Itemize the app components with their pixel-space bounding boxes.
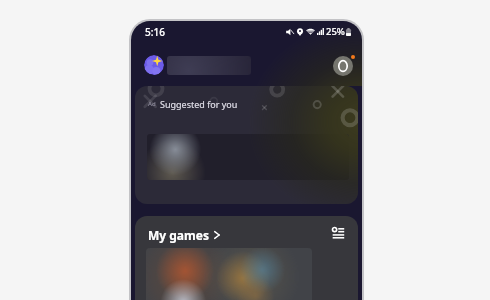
staticText: 25%	[326, 25, 345, 38]
button[interactable]	[146, 248, 312, 300]
button[interactable]: Ad	[135, 86, 358, 204]
button[interactable]: Account	[144, 55, 164, 75]
staticText: My games	[148, 227, 209, 243]
button[interactable]: View options	[332, 227, 345, 240]
button[interactable]: Search	[167, 56, 251, 75]
button[interactable]: Play Points	[333, 56, 353, 76]
staticText: Ad	[148, 100, 156, 108]
staticText: 5:16	[145, 25, 165, 39]
button[interactable]: My games	[148, 227, 220, 243]
staticText: Suggested for you	[160, 98, 238, 110]
